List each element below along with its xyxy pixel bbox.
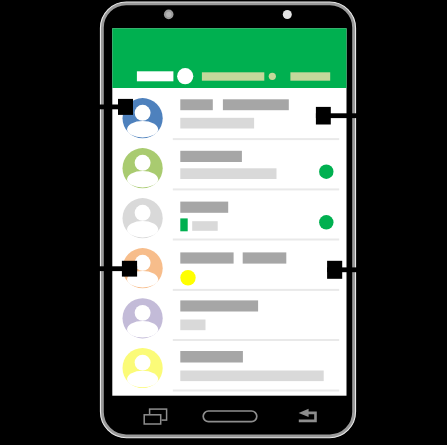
button[interactable]: Phone mockup screen bbox=[0, 0, 447, 445]
